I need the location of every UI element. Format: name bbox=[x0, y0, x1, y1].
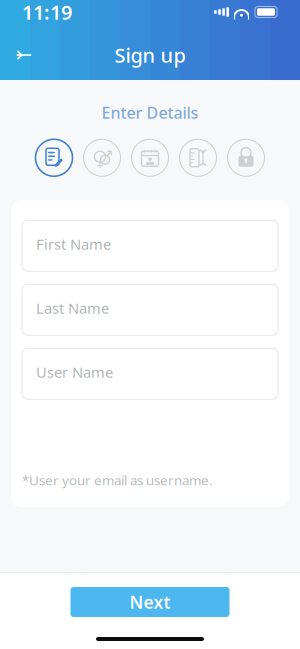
button[interactable]: Last Name bbox=[22, 284, 278, 335]
staticText: Enter Details bbox=[101, 102, 198, 123]
staticText: First Name bbox=[36, 234, 111, 254]
button[interactable]: Back bbox=[2, 37, 46, 73]
staticText: Sign up bbox=[114, 42, 185, 68]
staticText: Last Name bbox=[36, 298, 109, 318]
staticText: *User your email as username. bbox=[22, 471, 213, 489]
button[interactable]: Gender step bbox=[81, 137, 122, 178]
button[interactable]: Details step, current bbox=[33, 137, 74, 178]
button[interactable]: First Name bbox=[22, 220, 278, 271]
button[interactable]: Measurements step bbox=[177, 137, 218, 178]
staticText: User Name bbox=[36, 362, 113, 382]
button[interactable]: Password step bbox=[225, 137, 266, 178]
staticText: 11:19 bbox=[22, 0, 72, 25]
staticText: Next bbox=[129, 590, 170, 613]
button[interactable]: Birthday step bbox=[129, 137, 170, 178]
button[interactable]: Next bbox=[70, 587, 229, 617]
button[interactable]: User Name bbox=[22, 348, 278, 399]
